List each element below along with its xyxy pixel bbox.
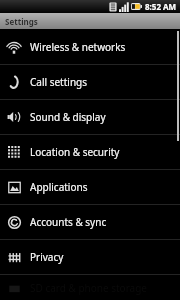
button[interactable]: Accounts and sync: [0, 205, 180, 239]
staticText: Applications: [30, 180, 88, 194]
staticText: 8:52 AM: [145, 1, 177, 12]
button[interactable]: Call settings: [0, 65, 180, 99]
staticText: Call settings: [30, 75, 88, 89]
staticText: Location & security: [30, 145, 120, 159]
button[interactable]: Location and security: [0, 135, 180, 169]
other: Sound and display: [7, 110, 21, 124]
other: Accounts and sync: [8, 216, 21, 229]
other: SD card and phone storage: [8, 282, 21, 295]
other: Call settings: [7, 75, 21, 89]
other: Location and security: [8, 146, 21, 159]
button[interactable]: Sound and display: [0, 100, 180, 134]
other: Wireless and networks: [7, 40, 21, 54]
other: Applications: [8, 181, 21, 194]
staticText: Wireless & networks: [30, 40, 126, 54]
other: Privacy: [8, 251, 21, 264]
staticText: Sound & display: [30, 110, 106, 124]
button[interactable]: Privacy: [0, 240, 180, 274]
staticText: Accounts & sync: [30, 215, 107, 229]
staticText: Settings: [5, 16, 38, 27]
staticText: Privacy: [30, 250, 64, 264]
button[interactable]: Applications: [0, 170, 180, 204]
button[interactable]: Wireless and networks: [0, 30, 180, 64]
